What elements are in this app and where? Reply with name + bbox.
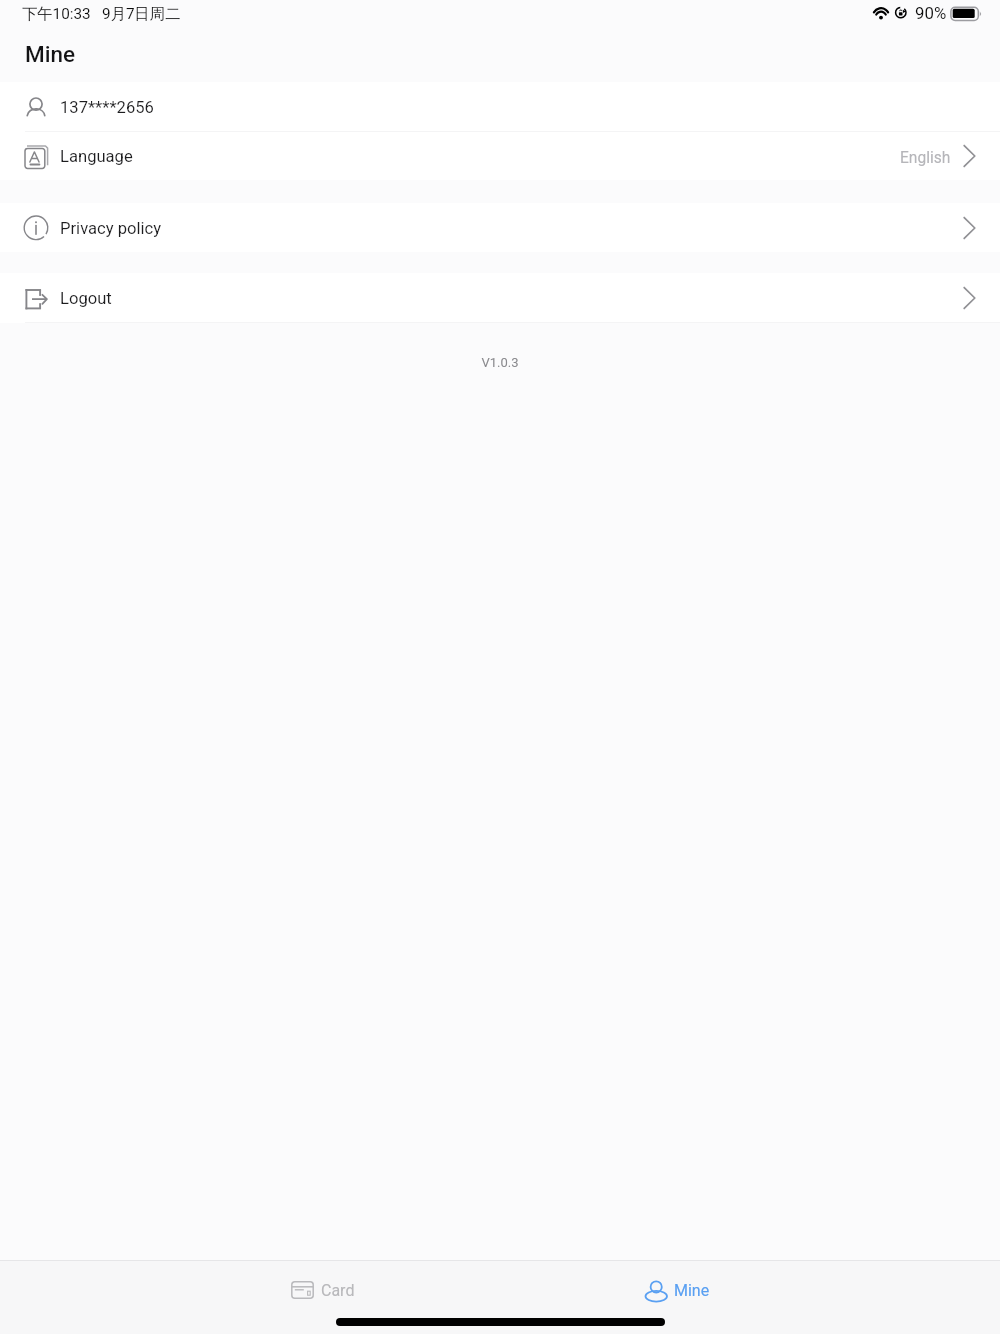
button[interactable]: Language (0, 131, 1000, 180)
button[interactable]: Card (0, 1261, 500, 1318)
staticText: 137****2656 (60, 98, 154, 117)
staticText: Privacy policy (60, 219, 162, 238)
staticText: 下午10:33 9月7日周二 (22, 4, 181, 23)
staticText: V1.0.3 (0, 355, 1000, 370)
button[interactable]: Mine (500, 1261, 1000, 1318)
staticText: Card (321, 1281, 355, 1300)
staticText: 90% (915, 3, 947, 23)
staticText: Language (60, 147, 133, 166)
button[interactable]: Account (0, 82, 1000, 131)
staticText: English (900, 149, 951, 167)
staticText: Mine (674, 1281, 710, 1300)
button[interactable]: Logout (0, 273, 1000, 322)
staticText: Logout (60, 289, 112, 308)
button[interactable]: Privacy policy (0, 203, 1000, 252)
staticText: Mine (25, 41, 75, 67)
